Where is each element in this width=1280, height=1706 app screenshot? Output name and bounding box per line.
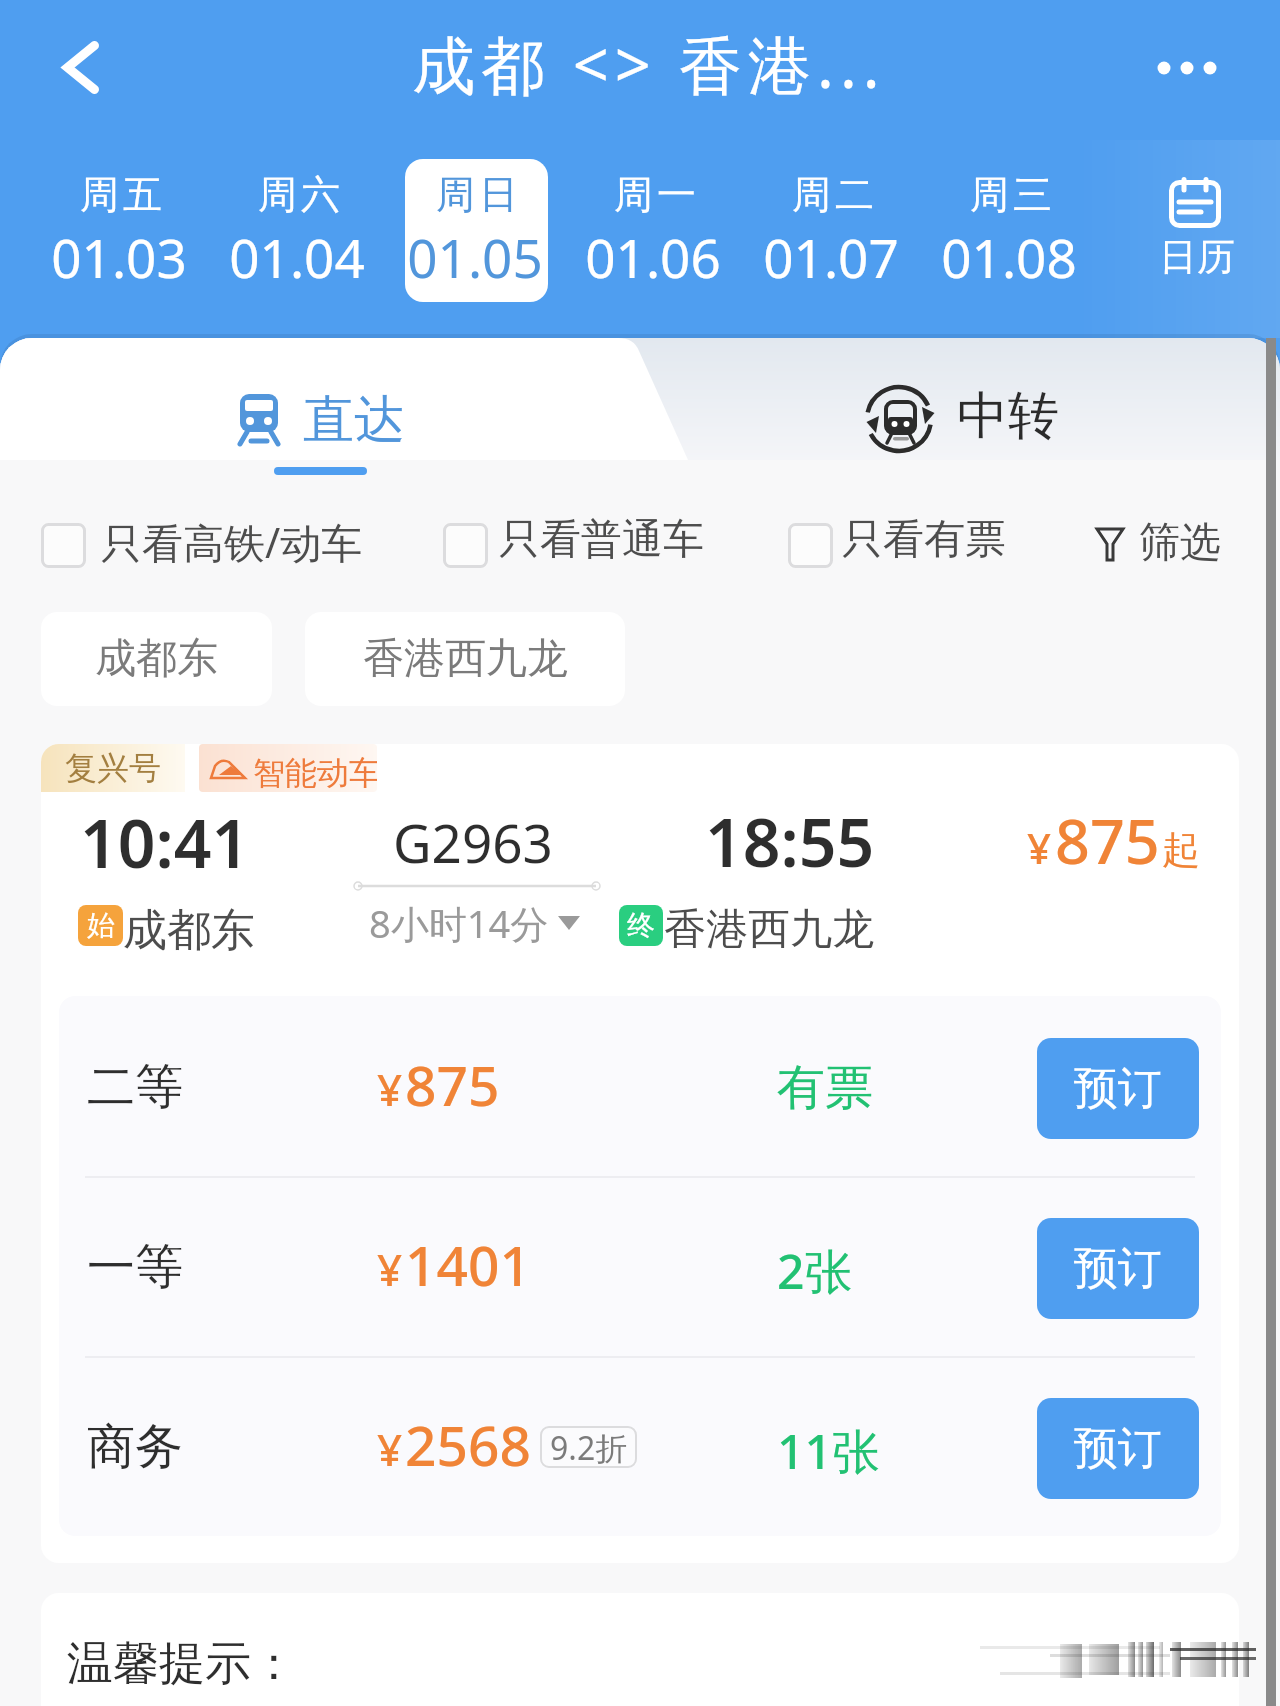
staticText: 香港西九龙 <box>664 903 874 956</box>
button[interactable]: 只看有票 <box>782 508 946 572</box>
staticText: 2568 <box>405 1407 531 1482</box>
button[interactable]: 周日 <box>386 159 564 302</box>
staticText: 成都 <> 香港... <box>9 21 1280 107</box>
staticText: 成都东 <box>95 633 218 685</box>
staticText: 起 <box>1162 826 1200 874</box>
staticText: 一等 <box>87 1237 183 1297</box>
staticText: 复兴号 <box>65 748 161 788</box>
staticText: G2963 <box>393 806 553 878</box>
button[interactable]: Back <box>20 12 130 122</box>
button[interactable]: 只看高铁/动车 <box>35 508 297 572</box>
button[interactable]: 只看普通车 <box>437 508 642 572</box>
staticText: 筛选 <box>1139 517 1221 569</box>
button[interactable]: 香港西九龙 <box>305 612 625 706</box>
staticText: 温馨提示： <box>67 1635 297 1693</box>
staticText: 只看普通车 <box>499 514 704 566</box>
button[interactable]: 周一 <box>564 159 742 302</box>
button[interactable]: More options <box>1130 20 1244 116</box>
button[interactable]: 周六 <box>208 159 386 302</box>
staticText: 直达 <box>303 388 405 452</box>
staticText: 只看高铁/动车 <box>101 514 363 570</box>
staticText: ¥ <box>377 1239 403 1299</box>
staticText: 周三 <box>924 170 1102 219</box>
staticText: 01.04 <box>208 221 386 293</box>
staticText: 11张 <box>777 1418 880 1484</box>
staticText: 终 <box>627 908 655 943</box>
staticText: 875 <box>405 1047 500 1122</box>
button[interactable]: 成都东 <box>41 612 272 706</box>
staticText: 1401 <box>405 1227 531 1302</box>
button[interactable]: 直达 <box>180 338 470 480</box>
staticText: 有票 <box>777 1058 873 1118</box>
staticText: 始 <box>87 908 115 943</box>
staticText: 日历 <box>1137 233 1257 281</box>
staticText: 智能动车 <box>253 753 377 792</box>
staticText: 二等 <box>87 1057 183 1117</box>
staticText: 商务 <box>87 1417 183 1477</box>
button[interactable]: 周二 <box>742 159 920 302</box>
staticText: 875 <box>1055 799 1160 882</box>
staticText: ¥ <box>1027 819 1052 876</box>
button[interactable]: 中转 <box>830 338 1120 480</box>
staticText: ¥ <box>377 1419 403 1479</box>
button[interactable]: 预订 <box>1037 1398 1199 1499</box>
staticText: ¥ <box>377 1059 403 1119</box>
button[interactable]: 周五 <box>30 159 208 302</box>
staticText: 18:55 <box>705 796 875 886</box>
staticText: 只看有票 <box>842 514 1006 566</box>
button[interactable]: 复兴号 <box>41 744 1239 1563</box>
staticText: 周五 <box>34 170 212 219</box>
button[interactable]: 预订 <box>1037 1218 1199 1319</box>
staticText: 成都东 <box>123 903 255 958</box>
staticText: 01.05 <box>386 221 564 293</box>
staticText: 周日 <box>390 170 568 219</box>
staticText: 周一 <box>568 170 746 219</box>
button[interactable]: Calendar <box>1137 160 1257 300</box>
staticText: 预订 <box>1074 1061 1162 1116</box>
staticText: 预订 <box>1074 1421 1162 1476</box>
staticText: 01.07 <box>742 221 920 293</box>
staticText: 01.08 <box>920 221 1098 293</box>
staticText: 01.06 <box>564 221 742 293</box>
staticText: 10:41 <box>80 797 250 887</box>
staticText: 周六 <box>212 170 390 219</box>
staticText: 预订 <box>1074 1241 1162 1296</box>
button[interactable]: 预订 <box>1037 1038 1199 1139</box>
staticText: 9.2折 <box>550 1426 628 1468</box>
staticText: 中转 <box>957 384 1059 448</box>
staticText: 8小时14分 <box>369 897 549 949</box>
button[interactable]: 筛选 <box>1080 508 1250 572</box>
staticText: 周二 <box>746 170 924 219</box>
staticText: 香港西九龙 <box>363 633 568 685</box>
staticText: 2张 <box>777 1238 853 1304</box>
button[interactable]: 周三 <box>920 159 1098 302</box>
staticText: 01.03 <box>30 221 208 293</box>
